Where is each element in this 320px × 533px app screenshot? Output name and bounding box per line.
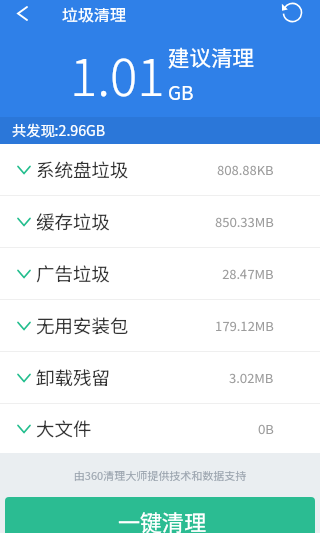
button[interactable]: Back (0, 0, 45, 26)
staticText: 共发现:2.96GB (12, 120, 106, 141)
staticText: 广告垃圾 (36, 260, 111, 287)
button[interactable]: 无用安装包 (0, 300, 320, 351)
button[interactable]: 系统盘垃圾 (0, 144, 320, 195)
button[interactable]: 一键清理 (5, 497, 315, 533)
button[interactable]: 缓存垃圾 (0, 196, 320, 247)
staticText: 850.33MB (215, 212, 274, 231)
staticText: 缓存垃圾 (36, 208, 111, 235)
staticText: 建议清理 (168, 41, 255, 72)
staticText: 由360清理大师提供技术和数据支持 (0, 467, 320, 483)
staticText: 大文件 (36, 415, 92, 442)
button[interactable]: Rescan (270, 0, 314, 26)
button[interactable]: 大文件 (0, 404, 320, 453)
button[interactable]: 广告垃圾 (0, 248, 320, 299)
staticText: 卸载残留 (36, 364, 111, 391)
staticText: 系统盘垃圾 (36, 156, 129, 183)
staticText: 一键清理 (118, 505, 207, 533)
staticText: 808.88KB (217, 160, 274, 179)
staticText: 垃圾清理 (62, 2, 127, 25)
staticText: 0B (258, 419, 274, 438)
staticText: GB (168, 78, 194, 106)
staticText: 179.12MB (215, 316, 274, 335)
staticText: 28.47MB (222, 264, 274, 283)
button[interactable]: 卸载残留 (0, 352, 320, 403)
staticText: 无用安装包 (36, 312, 129, 339)
staticText: 3.02MB (229, 368, 274, 387)
staticText: 1.01 (70, 37, 165, 111)
